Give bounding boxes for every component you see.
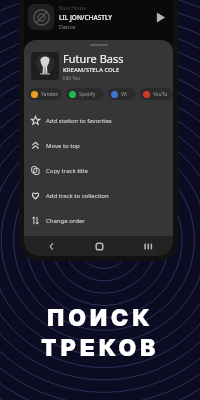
staticText: Change order	[46, 217, 85, 225]
button[interactable]: Home	[92, 239, 106, 253]
button[interactable]: Play	[154, 11, 167, 24]
staticText: KREAM/STELA COLE	[63, 66, 120, 74]
staticText: Edit You	[63, 75, 81, 81]
button[interactable]: Back	[44, 239, 58, 253]
button[interactable]: Add track to collection	[24, 183, 173, 208]
button[interactable]: VK	[108, 88, 136, 100]
staticText: YouTube	[153, 91, 170, 98]
staticText: Copy track title	[46, 167, 88, 175]
staticText: Add station to favorites	[46, 117, 112, 125]
staticText: VK	[121, 91, 128, 98]
button[interactable]: Move to top	[24, 133, 173, 158]
staticText: Move to top	[46, 142, 80, 150]
staticText: Bass House	[59, 5, 87, 12]
button[interactable]: Copy track title	[24, 158, 173, 183]
button[interactable]: Change order	[24, 208, 173, 233]
staticText: Future Bass	[63, 51, 124, 66]
button[interactable]: Add station to favorites	[24, 108, 173, 133]
button[interactable]: Yandex	[28, 88, 62, 100]
button[interactable]: YouTube	[140, 88, 173, 100]
staticText: ПОИСК	[47, 304, 154, 332]
staticText: Spotify	[79, 91, 96, 98]
button[interactable]: Recent apps	[140, 239, 154, 253]
staticText: LIL JON/CHASTLY	[59, 13, 113, 22]
staticText: Yandex	[41, 91, 58, 98]
staticText: Add track to collection	[46, 192, 109, 200]
staticText: ТРЕКОВ	[41, 334, 160, 362]
staticText: Dance	[59, 23, 76, 30]
button[interactable]: Bass House	[24, 0, 173, 34]
button[interactable]: Spotify	[66, 88, 104, 100]
